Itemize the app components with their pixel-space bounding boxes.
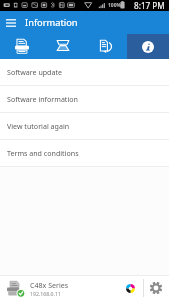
button[interactable]: View tutorial again [0,113,169,140]
button[interactable]: Terms and conditions [0,140,169,167]
button[interactable]: Fax [85,34,127,59]
button[interactable]: Print [0,34,43,59]
button[interactable]: Software information [0,86,169,113]
staticText: Software update [7,67,63,77]
staticText: 8:17 PM [134,0,165,11]
staticText: Software information [7,94,78,104]
staticText: 192.168.0.11 [30,290,61,297]
staticText: C48x Series [30,280,69,290]
staticText: Terms and conditions [7,148,79,158]
button[interactable]: Software update [0,59,169,86]
button[interactable]: Scan [43,34,85,59]
staticText: 100% [108,2,122,9]
staticText: Information [25,16,78,29]
button[interactable]: Settings [144,276,168,300]
button[interactable]: Open navigation drawer [0,12,22,34]
button[interactable]: C48x Series [0,276,118,300]
button[interactable]: Toner supplies [118,276,143,300]
button[interactable]: Information [127,34,169,59]
staticText: View tutorial again [7,121,70,131]
